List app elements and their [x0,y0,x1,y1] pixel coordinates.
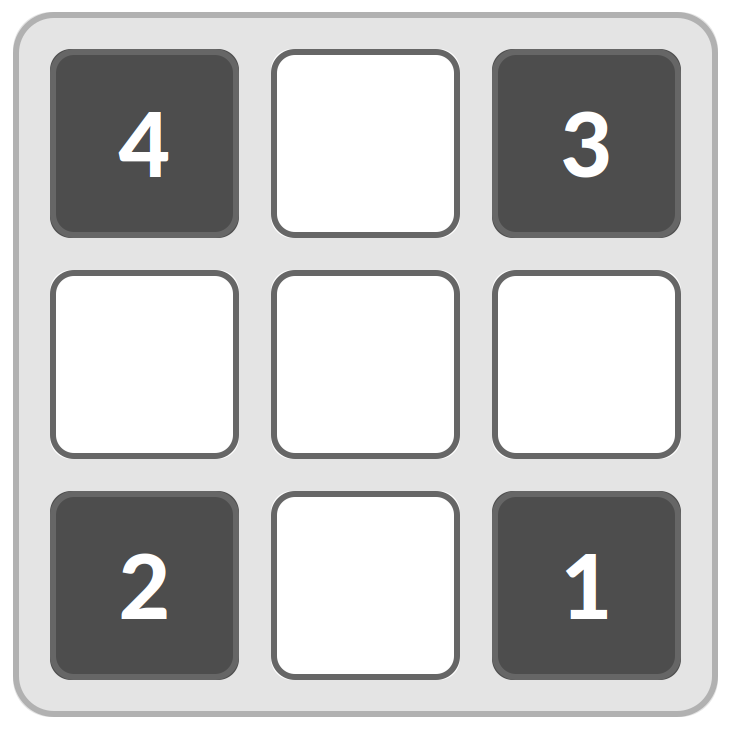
staticText: 1 [560,531,612,638]
button[interactable]: Empty square [271,491,460,680]
staticText: 2 [118,531,170,638]
button[interactable]: Empty square [271,270,460,459]
button[interactable]: Empty square [492,270,681,459]
button[interactable]: Tile 1 [492,491,681,680]
staticText: 4 [118,89,170,196]
button[interactable]: Tile 3 [492,49,681,238]
button[interactable]: Empty square [50,270,239,459]
button[interactable]: Tile 2 [50,491,239,680]
button[interactable]: Tile 4 [50,49,239,238]
button[interactable]: Empty square [271,49,460,238]
staticText: 3 [560,89,612,196]
